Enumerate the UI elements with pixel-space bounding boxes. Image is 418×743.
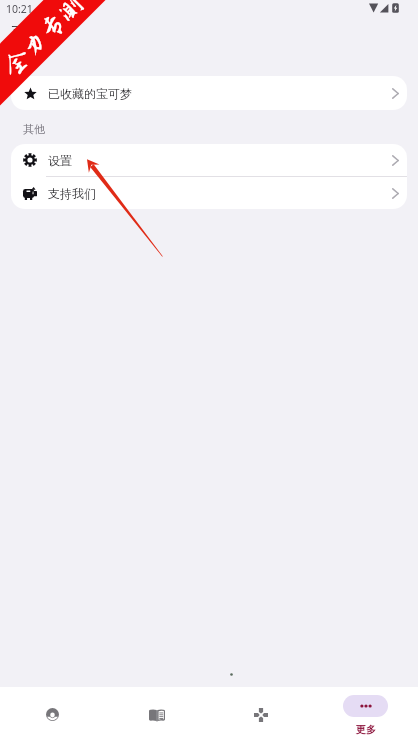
button[interactable]: 支持我们 <box>11 177 407 209</box>
staticText: 10:21 <box>6 2 33 16</box>
staticText: 支持我们 <box>48 186 96 201</box>
button[interactable]: 更多 <box>313 687 418 743</box>
staticText: 已收藏的宝可梦 <box>48 86 132 101</box>
staticText: 更多 <box>356 723 376 736</box>
button[interactable]: 设置 <box>11 144 407 176</box>
staticText: 其他 <box>23 122 45 136</box>
button[interactable]: 已收藏的宝可梦 <box>11 76 407 110</box>
staticText: 更多 <box>11 23 45 44</box>
button[interactable]: Pokemon <box>0 687 104 743</box>
button[interactable]: Games <box>208 687 313 743</box>
button[interactable]: Pokedex <box>104 687 208 743</box>
staticText: 全力专测 <box>0 0 89 81</box>
staticText: 设置 <box>48 153 72 168</box>
